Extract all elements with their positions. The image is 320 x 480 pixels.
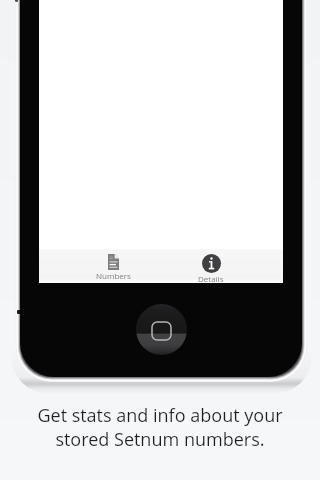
button[interactable]: Details	[171, 249, 251, 283]
staticText: Get stats and info about your stored Set…	[37, 403, 283, 451]
staticText: Details	[198, 273, 224, 283]
button[interactable]: Numbers	[73, 249, 153, 281]
staticText: Numbers	[96, 270, 131, 281]
button[interactable]: Home	[136, 304, 187, 355]
